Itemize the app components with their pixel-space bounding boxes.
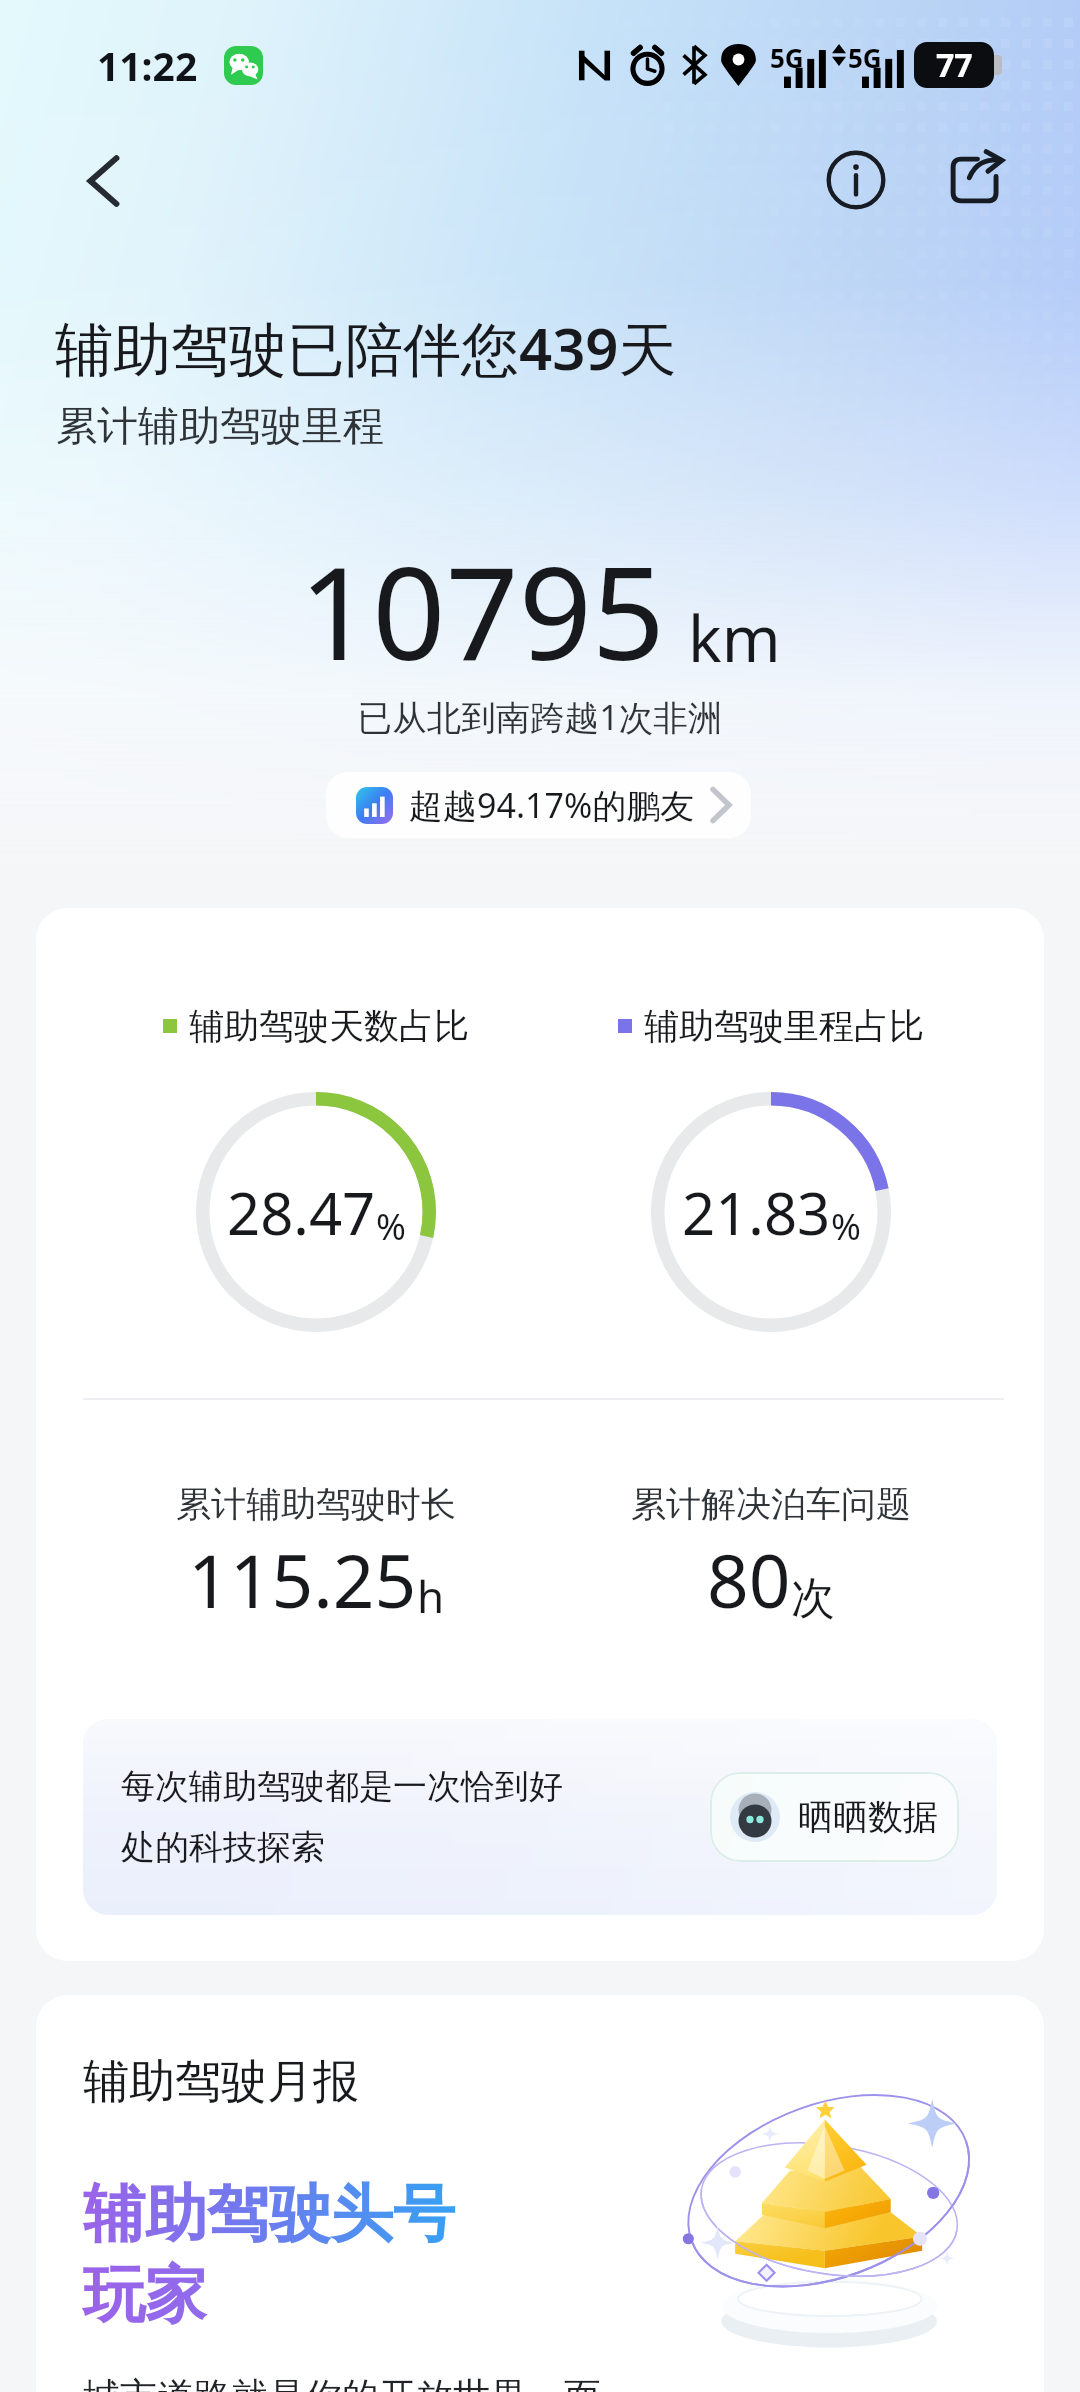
button[interactable]: 辅助驾驶月报 xyxy=(36,1995,1044,2392)
staticText: 玩家 xyxy=(83,2256,207,2334)
staticText: km xyxy=(688,595,781,681)
staticText: 77 xyxy=(936,43,973,87)
staticText: 5G xyxy=(848,40,882,75)
staticText: 城市道路就是你的开放世界，而 xyxy=(83,2373,601,2392)
staticText: 累计辅助驾驶里程 xyxy=(56,401,384,453)
staticText: 28.47 xyxy=(227,1173,376,1252)
staticText: % xyxy=(831,1202,861,1251)
staticText: % xyxy=(376,1202,406,1251)
staticText: 辅助驾驶月报 xyxy=(83,2053,359,2111)
staticText: 已从北到南跨越1次非洲 xyxy=(0,693,1080,740)
staticText: 辅助驾驶里程占比 xyxy=(644,1004,924,1048)
staticText: 处的科技探索 xyxy=(121,1826,325,1869)
staticText: 21.83 xyxy=(682,1173,831,1252)
staticText: 晒晒数据 xyxy=(798,1795,938,1839)
staticText: 辅助驾驶天数占比 xyxy=(189,1004,469,1048)
staticText: 累计辅助驾驶时长 xyxy=(176,1482,456,1526)
staticText: 辅助驾驶头号 xyxy=(83,2175,455,2253)
staticText: 次 xyxy=(791,1571,835,1626)
staticText: 115.25 xyxy=(188,1530,417,1629)
staticText: 累计解决泊车问题 xyxy=(631,1482,911,1526)
staticText: 10795 xyxy=(299,523,666,697)
staticText: 11:22 xyxy=(97,39,198,92)
staticText: 每次辅助驾驶都是一次恰到好 xyxy=(121,1765,563,1808)
button[interactable]: 晒晒数据 xyxy=(710,1772,959,1862)
staticText: 辅助驾驶已陪伴您439天 xyxy=(55,308,677,387)
button[interactable]: Back xyxy=(68,144,142,218)
staticText: h xyxy=(417,1566,445,1626)
button[interactable]: Share xyxy=(936,142,1012,218)
button[interactable]: Info xyxy=(818,142,894,218)
staticText: 5G xyxy=(770,40,804,75)
staticText: 80 xyxy=(707,1530,791,1629)
button[interactable]: 超越94.17%的鹏友 xyxy=(326,772,751,838)
staticText: 超越94.17%的鹏友 xyxy=(409,782,695,828)
